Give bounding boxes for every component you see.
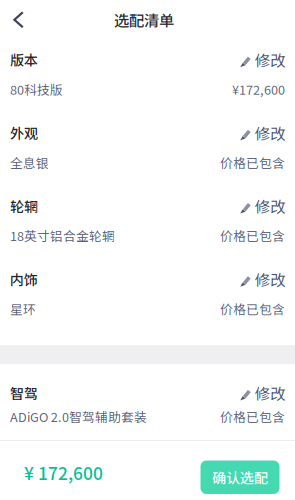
button[interactable]: 修改 [240,193,285,219]
staticText: 18英寸铝合金轮辋 [10,226,115,245]
button[interactable]: 确认选配 [200,460,279,494]
staticText: 价格已包含 [220,153,285,171]
staticText: ¥ 172,600 [24,460,103,485]
staticText: 外观 [10,123,38,143]
staticText: 内饰 [10,269,38,289]
button[interactable]: 修改 [240,266,285,292]
staticText: 修改 [255,382,285,404]
button[interactable]: Back [0,2,35,37]
button[interactable]: 修改 [240,120,285,146]
button[interactable]: 修改 [240,380,285,406]
staticText: 价格已包含 [220,300,285,318]
staticText: 价格已包含 [220,407,285,426]
staticText: ¥172,600 [232,80,285,98]
staticText: 版本 [10,49,38,70]
staticText: 智驾 [10,383,38,403]
button[interactable]: 修改 [240,46,285,73]
staticText: 确认选配 [212,467,268,487]
staticText: 修改 [255,122,285,144]
staticText: 修改 [255,268,285,290]
staticText: 修改 [255,195,285,217]
staticText: 轮辋 [10,196,38,216]
staticText: ADiGO 2.0智驾辅助套装 [10,407,147,426]
staticText: 全息银 [10,153,49,171]
staticText: 选配清单 [114,9,174,31]
staticText: 80科技版 [10,80,63,98]
staticText: 星环 [10,300,36,318]
staticText: 价格已包含 [220,226,285,245]
staticText: 修改 [255,48,285,71]
